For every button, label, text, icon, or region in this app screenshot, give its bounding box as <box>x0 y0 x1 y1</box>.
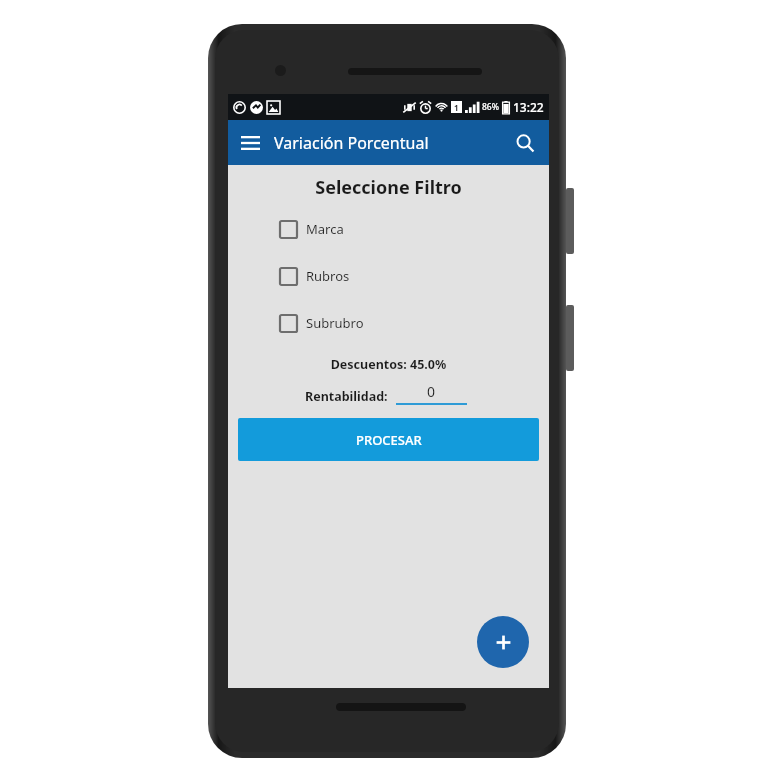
button[interactable]: Subrubro <box>228 314 549 332</box>
button[interactable]: Rubros <box>228 267 549 285</box>
staticText: PROCESAR <box>356 431 422 449</box>
staticText: Subrubro <box>306 314 364 332</box>
button[interactable]: 0 <box>396 382 467 405</box>
staticText: Rubros <box>306 267 350 285</box>
staticText: Seleccione Filtro <box>228 175 549 200</box>
staticText: 1 <box>454 102 459 113</box>
button[interactable]: Add <box>477 616 529 668</box>
staticText: 86% <box>482 101 499 113</box>
staticText: Descuentos: 45.0% <box>228 356 549 373</box>
button[interactable]: Search <box>509 127 541 159</box>
staticText: Marca <box>306 220 344 238</box>
button[interactable]: Open navigation menu <box>235 127 266 158</box>
staticText: 0 <box>427 382 436 401</box>
staticText: Rentabilidad: <box>305 388 388 405</box>
button[interactable]: PROCESAR <box>238 418 539 461</box>
staticText: Variación Porcentual <box>274 132 429 154</box>
button[interactable]: Marca <box>228 220 549 238</box>
staticText: 13:22 <box>513 99 544 115</box>
